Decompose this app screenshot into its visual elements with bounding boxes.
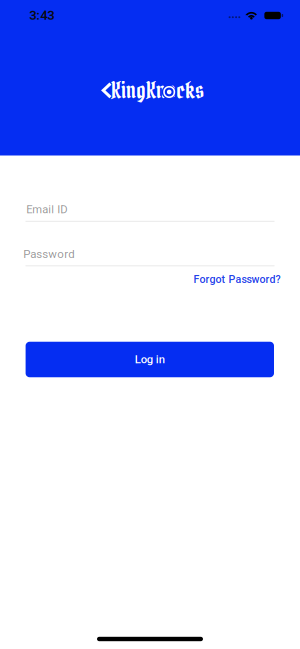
staticText: KingKnocks [111, 76, 204, 105]
staticText: Email ID [26, 203, 67, 216]
staticText: Password [23, 247, 74, 261]
button[interactable]: Forgot Password? [193, 273, 280, 285]
button[interactable]: Log in [26, 342, 274, 377]
staticText: Forgot Password? [193, 273, 280, 285]
staticText: Log in [135, 353, 165, 366]
staticText: 3:43 [29, 8, 54, 23]
